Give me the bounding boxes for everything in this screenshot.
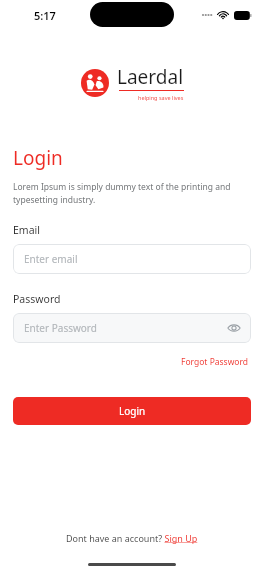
staticText: Laerdal xyxy=(117,64,184,90)
staticText: helping save lives xyxy=(138,94,184,101)
button[interactable]: Show password xyxy=(225,319,243,337)
staticText: Login xyxy=(119,404,146,418)
button[interactable]: Enter Password xyxy=(13,313,251,343)
button[interactable]: Forgot Password xyxy=(179,354,251,370)
button[interactable]: Dont have an account? Sign Up xyxy=(0,532,264,544)
staticText: Enter email xyxy=(24,252,78,266)
staticText: Dont have an account? Sign Up xyxy=(66,532,198,544)
staticText: Email xyxy=(13,223,40,237)
staticText: Login xyxy=(13,145,63,171)
staticText: Password xyxy=(13,292,61,306)
staticText: Lorem Ipsum is simply dummy text of the … xyxy=(13,181,251,206)
staticText: 5:17 xyxy=(34,8,56,23)
button[interactable]: Login xyxy=(13,397,251,425)
button[interactable]: Enter email xyxy=(13,244,251,274)
staticText: Forgot Password xyxy=(181,356,249,368)
staticText: Enter Password xyxy=(24,321,97,335)
